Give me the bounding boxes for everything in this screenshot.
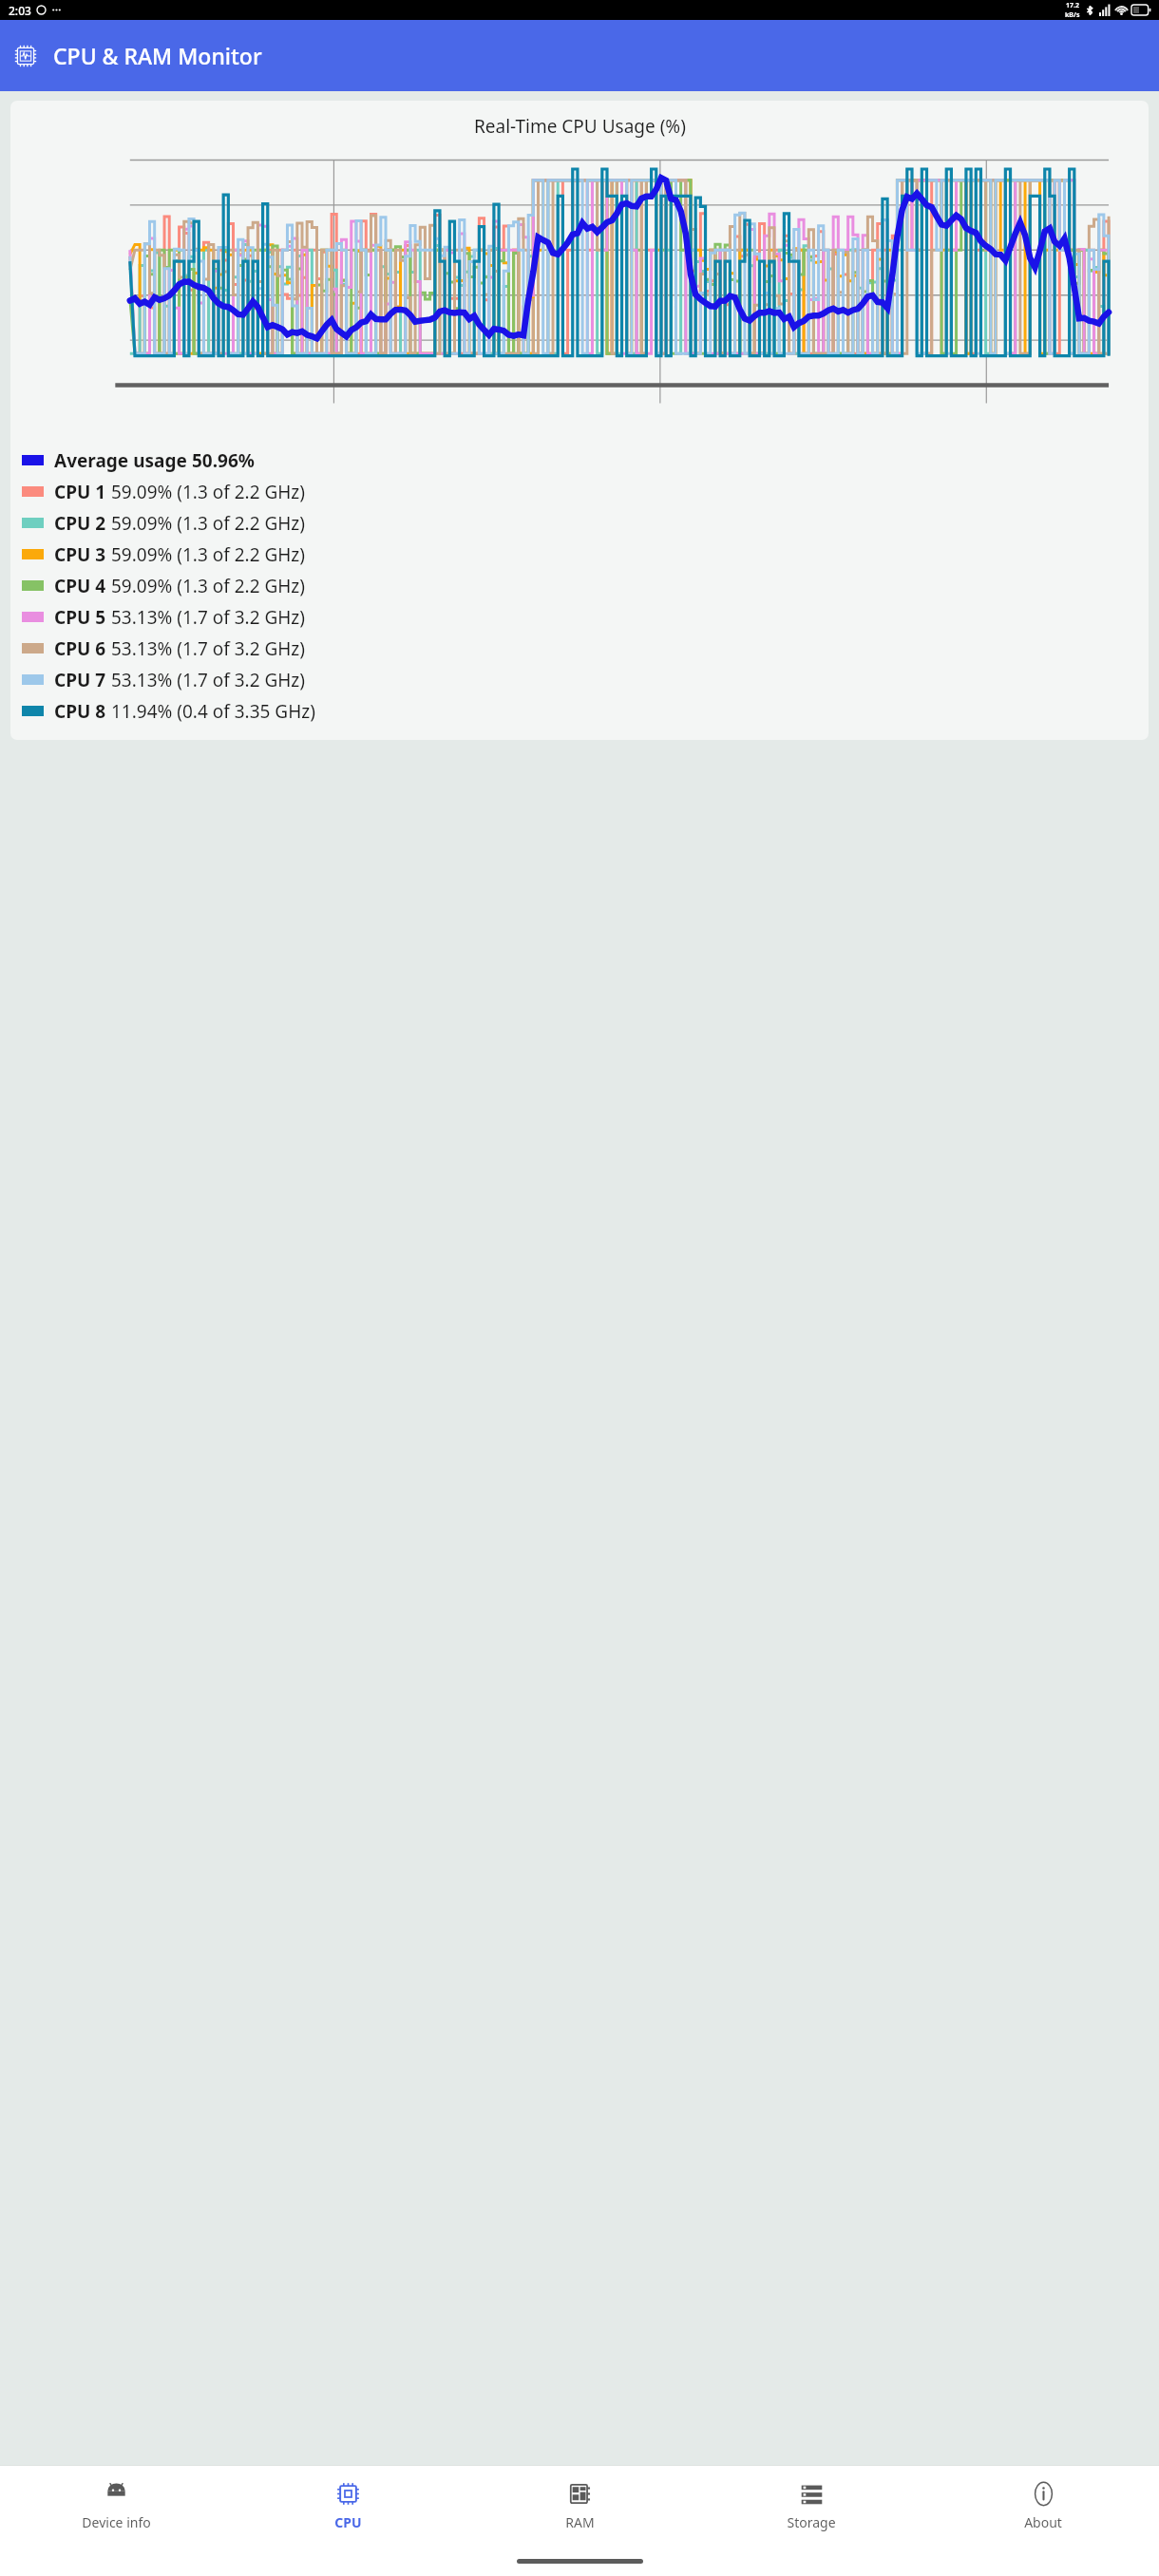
- staticText: CPU: [334, 2513, 362, 2531]
- button[interactable]: Device info: [0, 2466, 232, 2546]
- button[interactable]: Storage: [695, 2466, 927, 2546]
- button[interactable]: CPU 8: [10, 695, 1149, 727]
- button[interactable]: Average usage: [10, 445, 1149, 476]
- button[interactable]: CPU: [232, 2466, 464, 2546]
- button[interactable]: CPU 5: [10, 601, 1149, 633]
- staticText: CPU 3: [54, 542, 106, 567]
- button[interactable]: CPU 6: [10, 633, 1149, 664]
- staticText: 59.09% (1.3 of 2.2 GHz): [106, 574, 305, 598]
- button[interactable]: About: [927, 2466, 1159, 2546]
- staticText: 53.13% (1.7 of 3.2 GHz): [106, 636, 305, 661]
- staticText: CPU 8: [54, 699, 106, 724]
- staticText: Real-Time CPU Usage (%): [474, 114, 686, 139]
- staticText: 59.09% (1.3 of 2.2 GHz): [106, 480, 305, 504]
- staticText: CPU 1: [54, 480, 106, 504]
- button[interactable]: CPU 1: [10, 476, 1149, 507]
- staticText: Average usage: [54, 448, 187, 473]
- staticText: kB/s: [1065, 10, 1080, 20]
- button[interactable]: CPU 2: [10, 507, 1149, 539]
- staticText: 50.96%: [187, 448, 255, 473]
- staticText: 59.09% (1.3 of 2.2 GHz): [106, 542, 305, 567]
- button[interactable]: RAM: [464, 2466, 695, 2546]
- staticText: CPU 7: [54, 668, 106, 692]
- button[interactable]: CPU 7: [10, 664, 1149, 695]
- staticText: Storage: [787, 2513, 836, 2531]
- button[interactable]: CPU 3: [10, 539, 1149, 570]
- staticText: Device info: [82, 2513, 151, 2531]
- staticText: CPU & RAM Monitor: [53, 41, 262, 70]
- staticText: 11.94% (0.4 of 3.35 GHz): [106, 699, 315, 724]
- staticText: 17.2: [1066, 1, 1079, 10]
- staticText: CPU 5: [54, 605, 106, 630]
- staticText: 2:03: [9, 3, 31, 18]
- staticText: CPU 6: [54, 636, 106, 661]
- staticText: About: [1024, 2513, 1062, 2531]
- staticText: RAM: [565, 2513, 595, 2531]
- staticText: 59.09% (1.3 of 2.2 GHz): [106, 511, 305, 536]
- staticText: 53.13% (1.7 of 3.2 GHz): [106, 605, 305, 630]
- button[interactable]: CPU 4: [10, 570, 1149, 601]
- staticText: CPU 2: [54, 511, 106, 536]
- staticText: 53.13% (1.7 of 3.2 GHz): [106, 668, 305, 692]
- staticText: CPU 4: [54, 574, 106, 598]
